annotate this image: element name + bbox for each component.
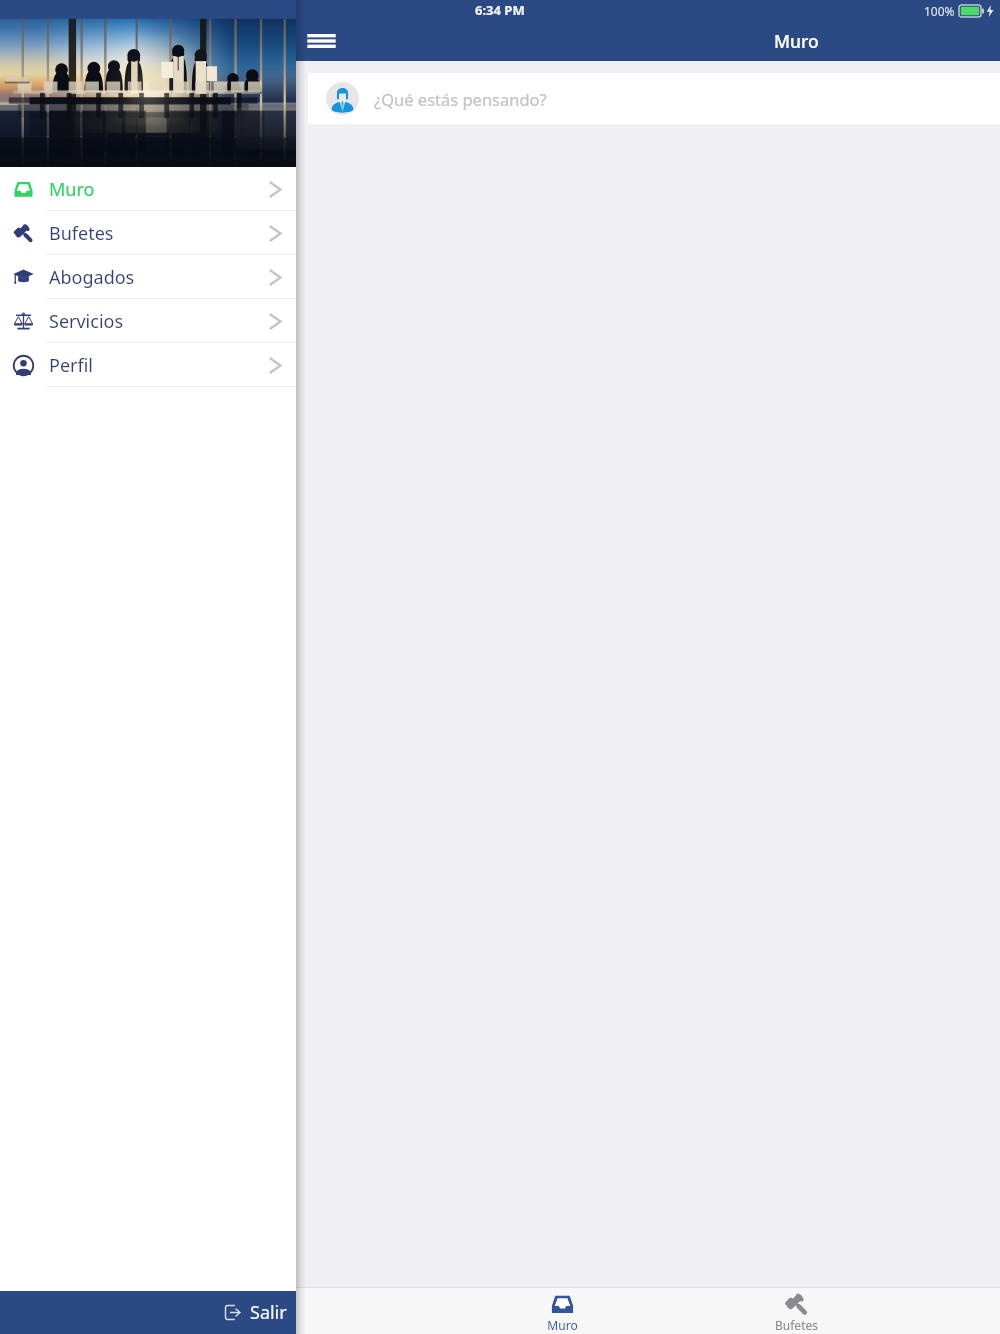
staticText: Muro [49,177,95,202]
button[interactable]: Open navigation menu [302,22,340,60]
button[interactable]: Muro [0,167,296,211]
button[interactable]: Bufetes [679,1287,913,1334]
staticText: 6:34 PM [475,1,525,19]
button[interactable]: Bufetes [0,211,296,255]
button[interactable]: Muro [445,1287,679,1334]
staticText: Bufetes [775,1317,818,1333]
staticText: ¿Qué estás pensando? [374,88,547,110]
button[interactable]: ¿Qué estás pensando? [308,73,1000,124]
staticText: Muro [774,29,819,53]
button[interactable]: Abogados [0,255,296,299]
staticText: Muro [547,1317,578,1333]
button[interactable]: Salir [0,1291,296,1334]
staticText: Perfil [49,353,93,378]
button[interactable]: Servicios [0,299,296,343]
staticText: Servicios [49,309,124,334]
staticText: 100% [924,3,955,19]
staticText: Abogados [49,265,135,290]
staticText: Bufetes [49,221,114,246]
button[interactable]: Perfil [0,343,296,387]
staticText: Salir [250,1300,287,1325]
